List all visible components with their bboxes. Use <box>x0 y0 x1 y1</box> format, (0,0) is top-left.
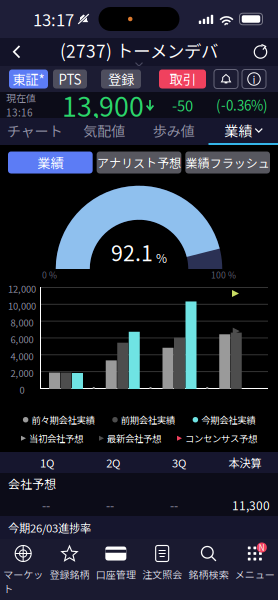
staticText: (-0.36%) <box>216 95 268 115</box>
button[interactable]: 口座管理 <box>93 545 139 589</box>
staticText: 0 % <box>42 268 57 281</box>
staticText: 業績 <box>37 153 63 172</box>
button[interactable]: 業績 <box>208 118 278 145</box>
button[interactable]: 東証* <box>9 69 48 88</box>
staticText: 12,000 <box>8 282 36 295</box>
button[interactable]: Back <box>2 39 32 65</box>
staticText: 注文照会 <box>142 567 182 581</box>
staticText: 13:16 <box>6 105 33 119</box>
staticText: 今期26/03進捗率 <box>8 519 91 536</box>
staticText: 1Q <box>40 454 54 471</box>
staticText: 10,000 <box>8 299 36 312</box>
staticText: マーケット <box>3 567 43 596</box>
staticText: コンセンサス予想 <box>185 431 257 445</box>
staticText: (2737) トーメンデバ <box>60 37 218 63</box>
staticText: -50 <box>172 94 193 116</box>
staticText: 本決算 <box>228 454 261 471</box>
staticText: 92.1 <box>111 237 153 267</box>
staticText: 今期会社実績 <box>201 413 255 426</box>
button[interactable]: 取引 <box>159 69 206 88</box>
staticText: 13:17 <box>33 7 74 31</box>
button[interactable]: 銘柄検索 <box>185 545 232 589</box>
staticText: -- <box>42 496 50 514</box>
staticText: アナリスト予想 <box>97 154 181 171</box>
button[interactable]: PTS <box>53 69 87 88</box>
button[interactable]: 登録銘柄 <box>46 545 93 589</box>
button[interactable]: 注文照会 <box>139 545 185 589</box>
staticText: チャート <box>7 120 63 141</box>
staticText: 銘柄検索 <box>188 567 228 581</box>
staticText: 2Q <box>106 454 120 471</box>
button[interactable]: N <box>232 545 278 589</box>
staticText: 業績フラッシュ <box>186 154 270 171</box>
staticText: 0 <box>19 383 24 396</box>
staticText: -- <box>170 496 178 514</box>
staticText: 100 % <box>211 268 236 281</box>
staticText: 登録銘柄 <box>49 567 89 581</box>
staticText: 現在値 <box>6 90 36 105</box>
staticText: 3Q <box>172 454 186 471</box>
staticText: 取引 <box>169 69 195 89</box>
button[interactable]: 登録 <box>101 69 141 88</box>
staticText: 11,300 <box>232 496 270 514</box>
staticText: PTS <box>58 69 81 89</box>
staticText: 前期会社実績 <box>121 413 175 426</box>
staticText: メニュー <box>235 567 275 581</box>
staticText: 会社予想 <box>8 475 56 492</box>
button[interactable]: 歩み値 <box>139 118 208 145</box>
staticText: 最新会社予想 <box>107 431 161 445</box>
staticText: 4,000 <box>10 349 33 363</box>
staticText: N <box>259 542 265 553</box>
button[interactable]: Info <box>242 69 266 88</box>
button[interactable]: アナリスト予想 <box>97 151 181 173</box>
button[interactable]: マーケット <box>0 545 46 589</box>
button[interactable]: 業績 <box>8 151 93 173</box>
staticText: 口座管理 <box>96 567 136 581</box>
staticText: 6,000 <box>10 332 33 346</box>
staticText: 登録 <box>108 69 134 89</box>
button[interactable]: チャート <box>0 118 69 145</box>
staticText: 気配値 <box>83 120 125 141</box>
staticText: 業績 <box>224 120 252 141</box>
staticText: 前々期会社実績 <box>31 413 94 426</box>
staticText: 当初会社予想 <box>29 431 83 445</box>
button[interactable]: 業績フラッシュ <box>185 151 270 173</box>
button[interactable]: Refresh <box>246 39 276 65</box>
staticText: 13,900 <box>62 86 144 124</box>
button[interactable]: 気配値 <box>69 118 139 145</box>
staticText: -- <box>106 496 114 514</box>
staticText: 2,000 <box>10 366 33 380</box>
staticText: % <box>156 249 167 266</box>
staticText: 8,000 <box>10 316 33 329</box>
button[interactable]: Alerts <box>214 69 238 88</box>
staticText: 東証* <box>12 69 44 89</box>
staticText: i <box>252 71 255 87</box>
staticText: 歩み値 <box>153 120 195 141</box>
